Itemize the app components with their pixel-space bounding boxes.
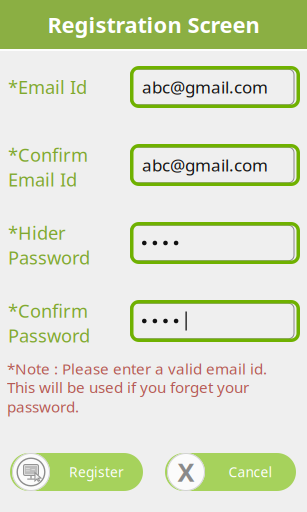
staticText: Register <box>69 463 124 481</box>
staticText: *Note : Please enter a valid email id. <box>7 358 267 379</box>
staticText: password. <box>7 396 79 417</box>
staticText: *Confirm Email Id <box>8 142 88 192</box>
staticText: Registration Screen <box>47 10 259 39</box>
staticText: *Email Id <box>8 75 87 99</box>
button[interactable]: Cancel <box>165 452 296 492</box>
button[interactable]: Register <box>10 452 143 492</box>
staticText: *Hider Password <box>8 220 90 270</box>
staticText: abc@gmail.com <box>142 75 268 99</box>
staticText: *Confirm Password <box>8 298 90 348</box>
staticText: Cancel <box>228 463 272 481</box>
staticText: This will be used if you forget your <box>7 377 249 397</box>
staticText: X <box>177 455 194 489</box>
staticText: abc@gmail.com <box>142 153 268 177</box>
